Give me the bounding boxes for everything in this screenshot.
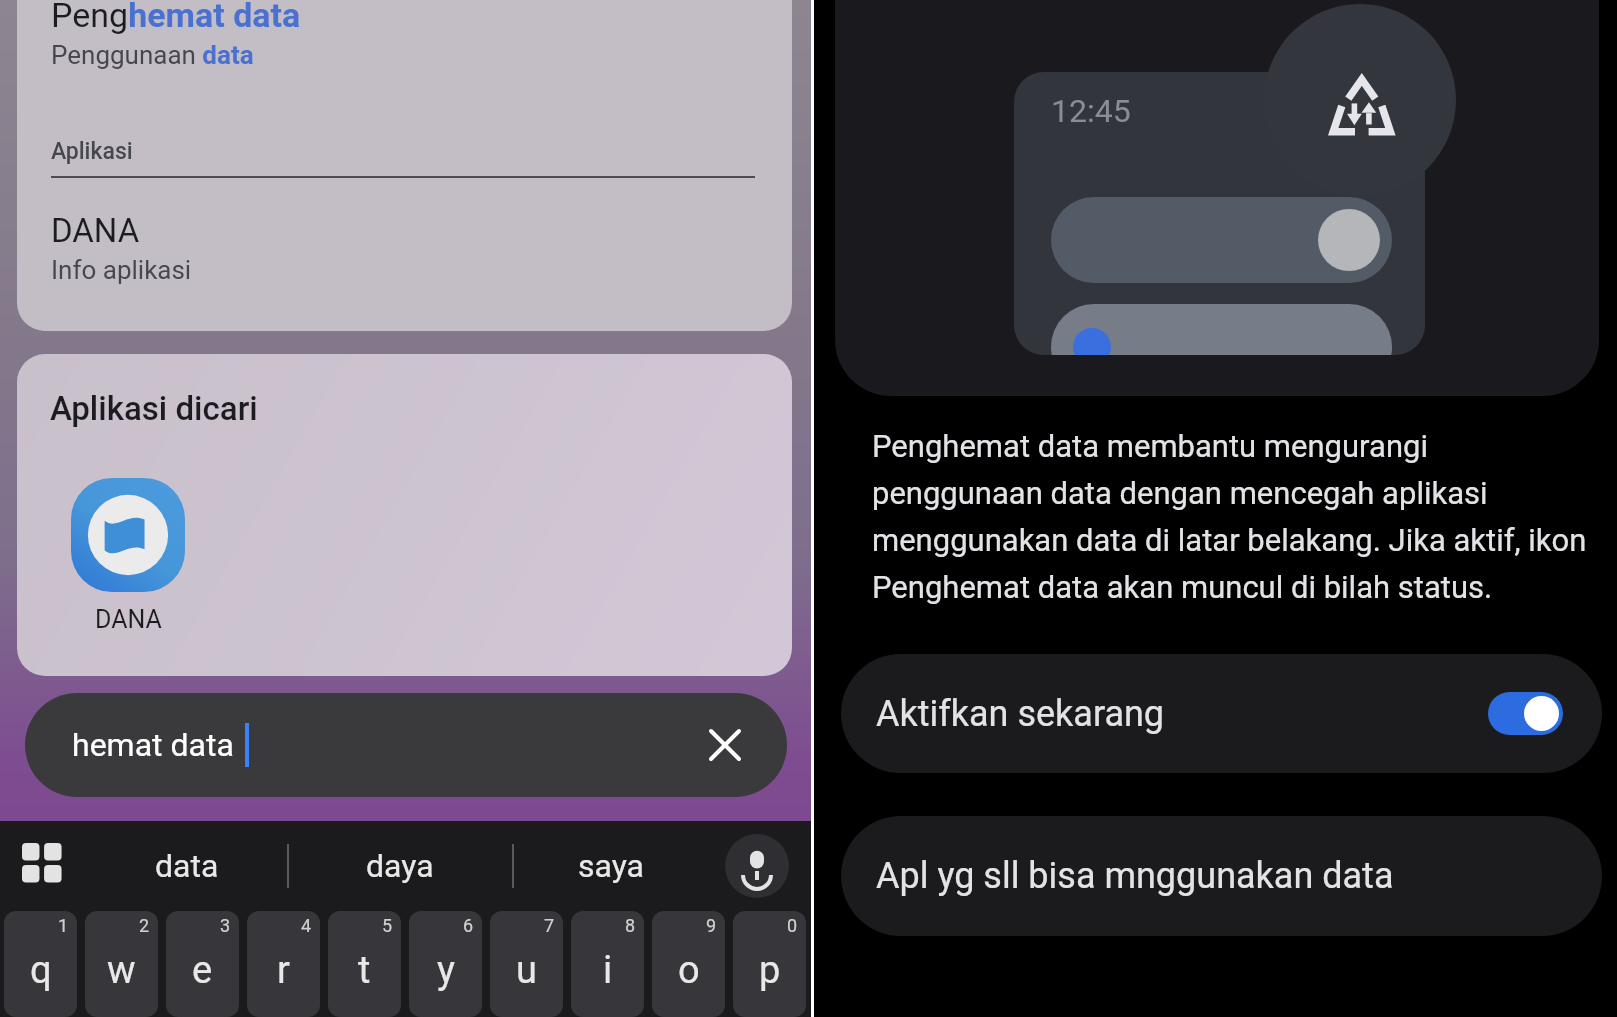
staticText: 0 — [787, 915, 798, 936]
staticText: 3 — [220, 915, 231, 936]
button[interactable]: data — [117, 821, 257, 911]
staticText: Info aplikasi — [51, 255, 192, 285]
button[interactable]: daya — [330, 821, 470, 911]
staticText: daya — [366, 847, 434, 885]
button[interactable]: u — [490, 911, 563, 1017]
button[interactable]: Apl yg sll bisa mnggunakan data — [841, 816, 1602, 936]
button[interactable]: e — [166, 911, 239, 1017]
staticText: r — [277, 948, 290, 993]
staticText: i — [603, 948, 613, 993]
staticText: 4 — [301, 915, 312, 936]
staticText: 5 — [382, 915, 393, 936]
staticText: Penggunaan data — [51, 40, 254, 70]
button[interactable]: Voice input — [725, 834, 789, 898]
staticText: DANA — [95, 605, 162, 634]
button[interactable]: DANA — [71, 478, 185, 634]
staticText: data — [155, 847, 219, 885]
staticText: Penghemat data membantu mengurangi pengg… — [872, 428, 1587, 606]
staticText: 6 — [463, 915, 474, 936]
staticText: 2 — [139, 915, 150, 936]
button[interactable]: i — [571, 911, 644, 1017]
staticText: Aplikasi dicari — [50, 389, 258, 428]
button[interactable]: Aplikasi dicari — [17, 354, 792, 676]
staticText: 8 — [625, 915, 636, 936]
button[interactable]: o — [652, 911, 725, 1017]
staticText: u — [516, 948, 537, 993]
staticText: 1 — [58, 915, 69, 936]
staticText: DANA — [51, 211, 140, 250]
staticText: Apl yg sll bisa mnggunakan data — [876, 855, 1394, 897]
staticText: hemat data — [72, 726, 234, 764]
staticText: Penghemat data — [51, 0, 301, 35]
staticText: w — [107, 948, 136, 993]
button[interactable]: Keyboard options — [22, 843, 68, 889]
button[interactable]: Penghemat data — [17, 0, 792, 331]
button[interactable]: Data saver — [1264, 4, 1456, 196]
staticText: Aplikasi — [51, 138, 133, 165]
staticText: 9 — [706, 915, 717, 936]
staticText: 7 — [544, 915, 555, 936]
button[interactable]: w — [85, 911, 158, 1017]
button[interactable]: y — [409, 911, 482, 1017]
button[interactable]: hemat data — [25, 693, 787, 797]
staticText: q — [30, 948, 52, 993]
staticText: t — [358, 948, 371, 993]
staticText: p — [759, 948, 781, 993]
staticText: Aktifkan sekarang — [876, 693, 1165, 735]
button[interactable]: q — [4, 911, 77, 1017]
staticText: y — [437, 948, 455, 993]
button[interactable]: t — [328, 911, 401, 1017]
button[interactable]: p — [733, 911, 806, 1017]
staticText: 12:45 — [1051, 92, 1131, 130]
button[interactable]: saya — [541, 821, 681, 911]
staticText: o — [678, 948, 700, 993]
button[interactable]: Clear — [703, 723, 747, 767]
button[interactable]: r — [247, 911, 320, 1017]
staticText: e — [192, 948, 213, 993]
button[interactable]: Aktifkan sekarang — [841, 654, 1602, 773]
staticText: saya — [578, 847, 644, 885]
